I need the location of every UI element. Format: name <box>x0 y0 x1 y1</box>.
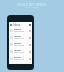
button[interactable] <box>9 55 32 62</box>
button[interactable] <box>9 34 32 41</box>
staticText: SIMPLE APP DESIGN <box>0 3 64 7</box>
staticText: ui kit · mobile <box>0 6 64 9</box>
button[interactable]: Menu <box>10 24 12 26</box>
button[interactable] <box>9 41 32 48</box>
button[interactable] <box>9 48 32 55</box>
button[interactable] <box>9 27 32 34</box>
staticText: Inbox <box>13 23 21 27</box>
